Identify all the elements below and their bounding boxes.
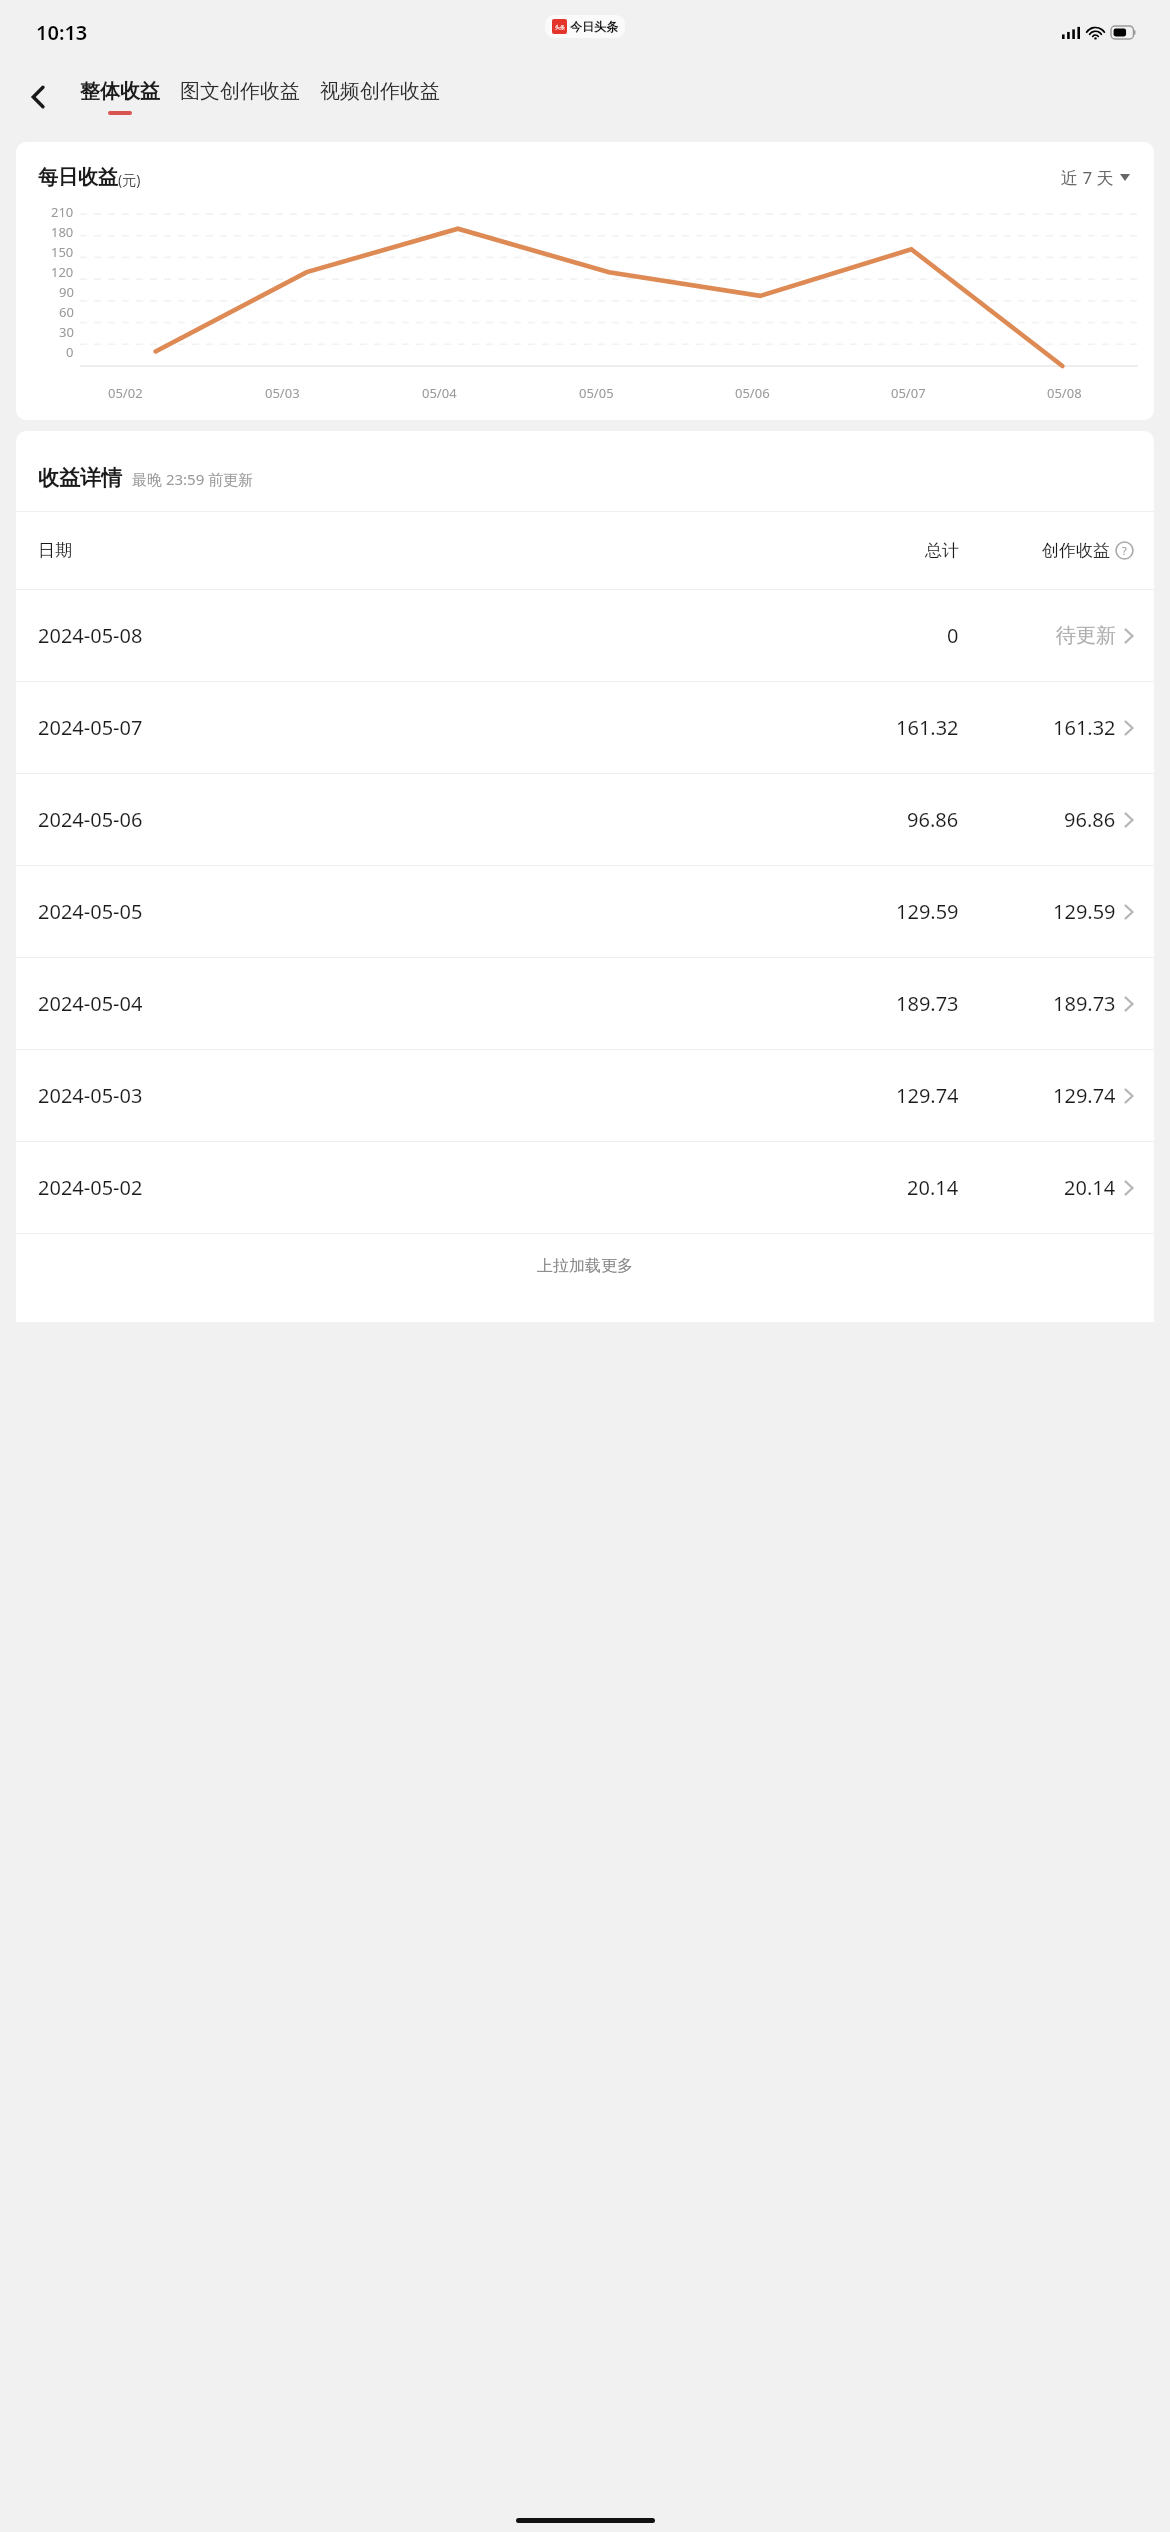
staticText: 整体收益 [80, 79, 160, 104]
staticText: 2024-05-07 [38, 714, 819, 741]
staticText: 日期 [38, 540, 819, 561]
staticText: 60 [59, 303, 74, 321]
staticText: 待更新 [1056, 623, 1116, 648]
staticText: 161.32 [896, 714, 959, 741]
staticText: 05/05 [579, 384, 614, 402]
staticText: 今日头条 [570, 19, 618, 34]
staticText: (元) [118, 170, 141, 189]
staticText: 上拉加载更多 [537, 1256, 633, 1276]
staticText: 2024-05-08 [38, 622, 819, 649]
button[interactable]: 2024-05-07 [16, 682, 1154, 773]
staticText: 129.74 [1053, 1082, 1116, 1109]
button[interactable]: 近 7 天 [1057, 162, 1134, 193]
button[interactable]: 图文创作收益 [176, 79, 304, 115]
staticText: 05/04 [422, 384, 457, 402]
button[interactable]: Help [1115, 541, 1134, 560]
button[interactable]: 2024-05-04 [16, 958, 1154, 1049]
staticText: 129.59 [896, 898, 959, 925]
staticText: 210 [51, 203, 74, 221]
staticText: 189.73 [896, 990, 959, 1017]
staticText: 2024-05-06 [38, 806, 819, 833]
staticText: 总计 [925, 540, 959, 561]
staticText: 0 [947, 622, 959, 649]
staticText: 161.32 [1053, 714, 1116, 741]
staticText: 10:13 [36, 19, 88, 46]
staticText: 189.73 [1053, 990, 1116, 1017]
staticText: 90 [59, 283, 74, 301]
staticText: 05/06 [735, 384, 770, 402]
staticText: ? [1122, 543, 1127, 558]
button[interactable]: 2024-05-02 [16, 1142, 1154, 1233]
button[interactable]: 2024-05-05 [16, 866, 1154, 957]
staticText: 05/07 [891, 384, 926, 402]
staticText: 05/08 [1047, 384, 1082, 402]
staticText: 近 7 天 [1061, 166, 1114, 189]
staticText: 05/03 [265, 384, 300, 402]
staticText: 视频创作收益 [320, 79, 440, 104]
staticText: 96.86 [907, 806, 959, 833]
staticText: 最晚 23:59 前更新 [132, 469, 254, 489]
staticText: 150 [51, 243, 74, 261]
staticText: 05/02 [108, 384, 143, 402]
staticText: 30 [59, 323, 74, 341]
staticText: 129.59 [1053, 898, 1116, 925]
button[interactable]: 2024-05-03 [16, 1050, 1154, 1141]
staticText: 0 [66, 343, 74, 361]
staticText: 2024-05-05 [38, 898, 819, 925]
staticText: 120 [51, 263, 74, 281]
staticText: 180 [51, 223, 74, 241]
staticText: 2024-05-04 [38, 990, 819, 1017]
staticText: 96.86 [1064, 806, 1116, 833]
staticText: 20.14 [1064, 1174, 1116, 1201]
button[interactable]: 2024-05-08 [16, 590, 1154, 681]
staticText: 创作收益 [1042, 540, 1110, 561]
staticText: 头条 [555, 24, 565, 30]
staticText: 129.74 [896, 1082, 959, 1109]
staticText: 收益详情 [38, 465, 122, 491]
staticText: 20.14 [907, 1174, 959, 1201]
staticText: 图文创作收益 [180, 79, 300, 104]
staticText: 2024-05-03 [38, 1082, 819, 1109]
staticText: 每日收益 [38, 165, 118, 190]
button[interactable]: 视频创作收益 [316, 79, 444, 115]
staticText: 2024-05-02 [38, 1174, 819, 1201]
button[interactable]: 2024-05-06 [16, 774, 1154, 865]
button[interactable]: 整体收益 [76, 79, 164, 115]
button[interactable]: Back [16, 74, 62, 120]
